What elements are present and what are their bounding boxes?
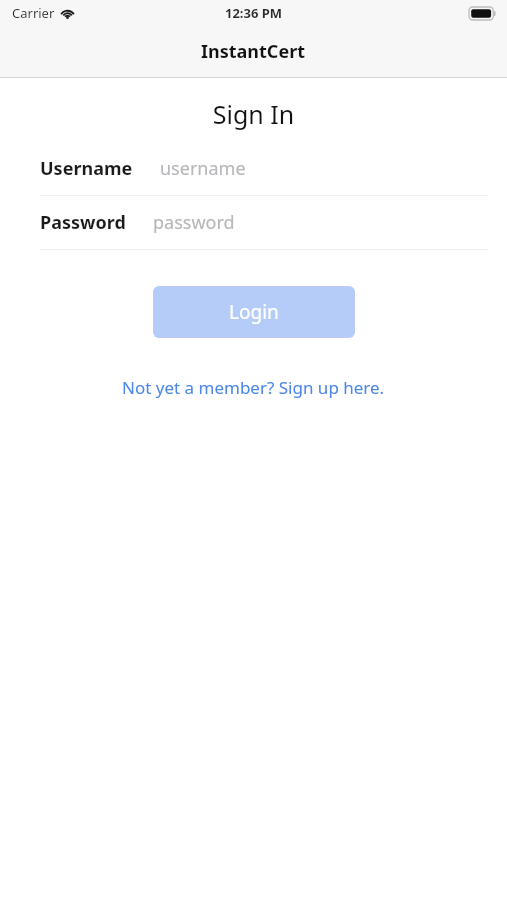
staticText: 12:36 PM [225,4,283,22]
staticText: Sign In [0,97,507,131]
staticText: InstantCert [201,39,306,64]
staticText: Not yet a member? Sign up here. [122,376,385,399]
button[interactable]: Login [153,286,355,338]
staticText: Carrier [12,4,55,22]
staticText: Username [40,156,133,181]
staticText: Login [229,299,279,325]
staticText: username [160,156,246,181]
button[interactable]: Username [0,151,507,185]
button[interactable]: Password [0,205,507,239]
button[interactable]: Not yet a member? Sign up here. [114,370,393,405]
staticText: password [153,210,235,235]
staticText: Password [40,210,126,235]
